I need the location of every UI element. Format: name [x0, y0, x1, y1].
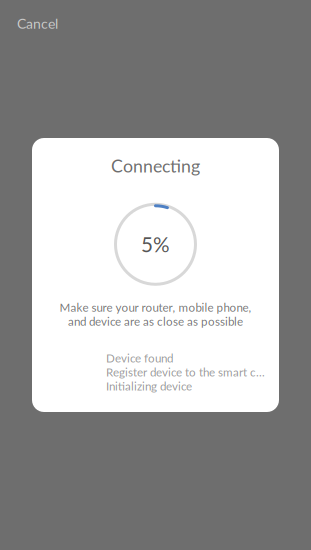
staticText: Cancel	[17, 15, 58, 32]
staticText: Register device to the smart c…	[106, 365, 265, 379]
staticText: 5%	[141, 232, 170, 257]
staticText: Connecting	[111, 155, 200, 176]
staticText: and device are as close as possible	[68, 314, 243, 328]
staticText: Initializing device	[106, 379, 192, 393]
button[interactable]: Cancel	[0, 0, 75, 47]
staticText: Make sure your router, mobile phone,	[59, 300, 251, 314]
staticText: Device found	[106, 351, 173, 365]
